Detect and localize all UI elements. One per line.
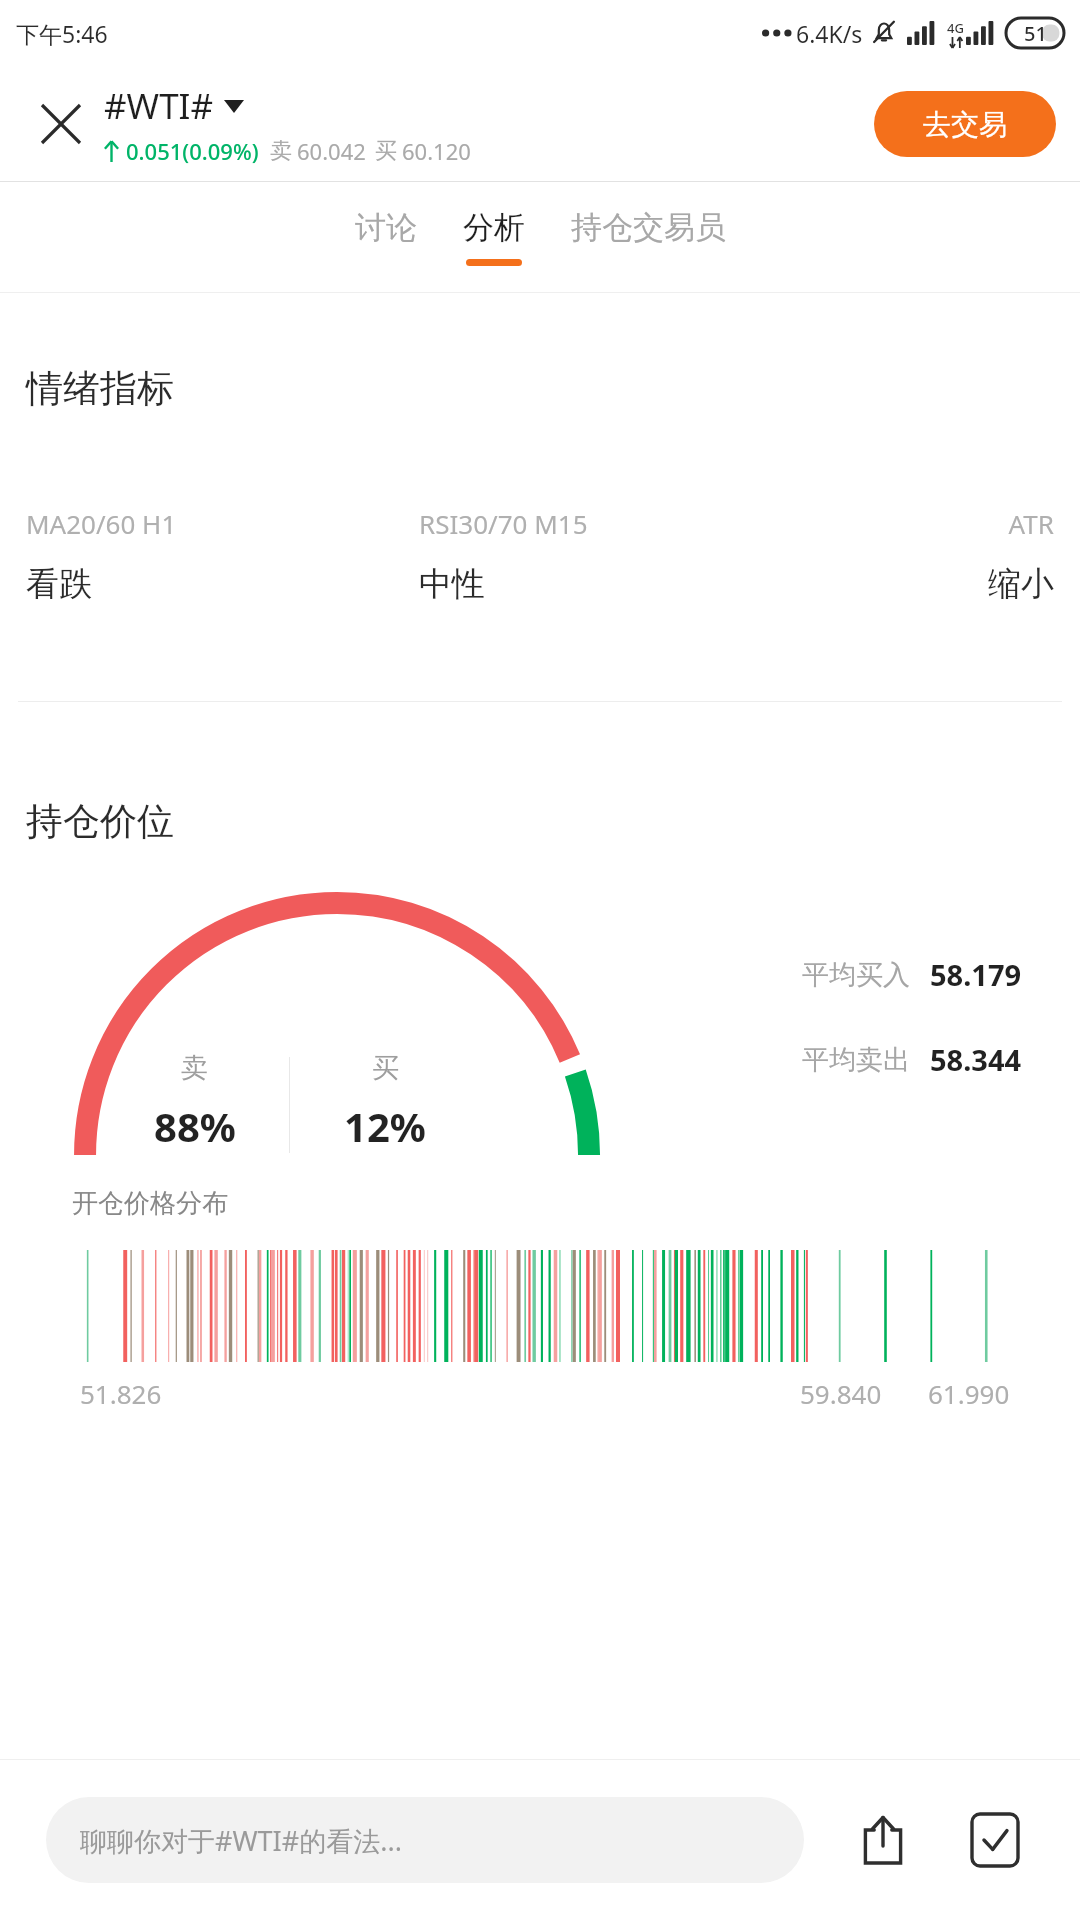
button[interactable]: 去交易	[874, 91, 1056, 157]
staticText: 88%	[154, 1099, 236, 1153]
staticText: 情绪指标	[26, 365, 174, 412]
staticText: 卖	[181, 1051, 208, 1085]
staticText: 中性	[419, 563, 811, 605]
staticText: #WTI#	[104, 82, 214, 130]
staticText: 51.826	[80, 1376, 162, 1411]
staticText: 60.042	[297, 136, 366, 166]
button[interactable]: 分析	[451, 200, 537, 274]
staticText: RSI30/70 M15	[419, 506, 811, 541]
staticText: 60.120	[402, 136, 471, 166]
staticText: 讨论	[355, 208, 417, 247]
button[interactable]: #WTI#	[104, 82, 244, 130]
staticText: 卖	[270, 137, 292, 165]
staticText: 6.4K/s	[796, 18, 863, 49]
button[interactable]: Close	[26, 89, 96, 159]
staticText: 下午5:46	[16, 18, 108, 49]
staticText: 4G	[947, 19, 964, 37]
staticText: 买	[375, 137, 397, 165]
staticText: 平均卖出	[802, 1043, 910, 1077]
staticText: 58.344	[930, 1040, 1022, 1079]
staticText: 聊聊你对于#WTI#的看法...	[80, 1822, 402, 1859]
button[interactable]: Share	[844, 1801, 922, 1879]
staticText: 去交易	[923, 107, 1007, 142]
staticText: 开仓价格分布	[72, 1187, 228, 1220]
staticText: MA20/60 H1	[26, 506, 419, 541]
staticText: 0.051(0.09%)	[126, 136, 259, 166]
staticText: 12%	[344, 1099, 426, 1153]
staticText: ATR	[811, 506, 1054, 541]
staticText: 买	[372, 1051, 399, 1085]
staticText: 缩小	[811, 563, 1054, 605]
staticText: 51	[1024, 20, 1047, 47]
button[interactable]: 讨论	[343, 200, 429, 274]
staticText: 61.990	[928, 1376, 1010, 1411]
button[interactable]: 持仓交易员	[559, 200, 738, 274]
button[interactable]: Confirm	[956, 1801, 1034, 1879]
button[interactable]: 聊聊你对于#WTI#的看法...	[46, 1797, 804, 1883]
staticText: 持仓交易员	[571, 208, 726, 247]
staticText: 平均买入	[802, 958, 910, 992]
staticText: 59.840	[800, 1376, 882, 1411]
staticText: 持仓价位	[26, 798, 174, 845]
staticText: 看跌	[26, 563, 419, 605]
staticText: 58.179	[930, 955, 1022, 994]
staticText: 分析	[463, 208, 525, 247]
